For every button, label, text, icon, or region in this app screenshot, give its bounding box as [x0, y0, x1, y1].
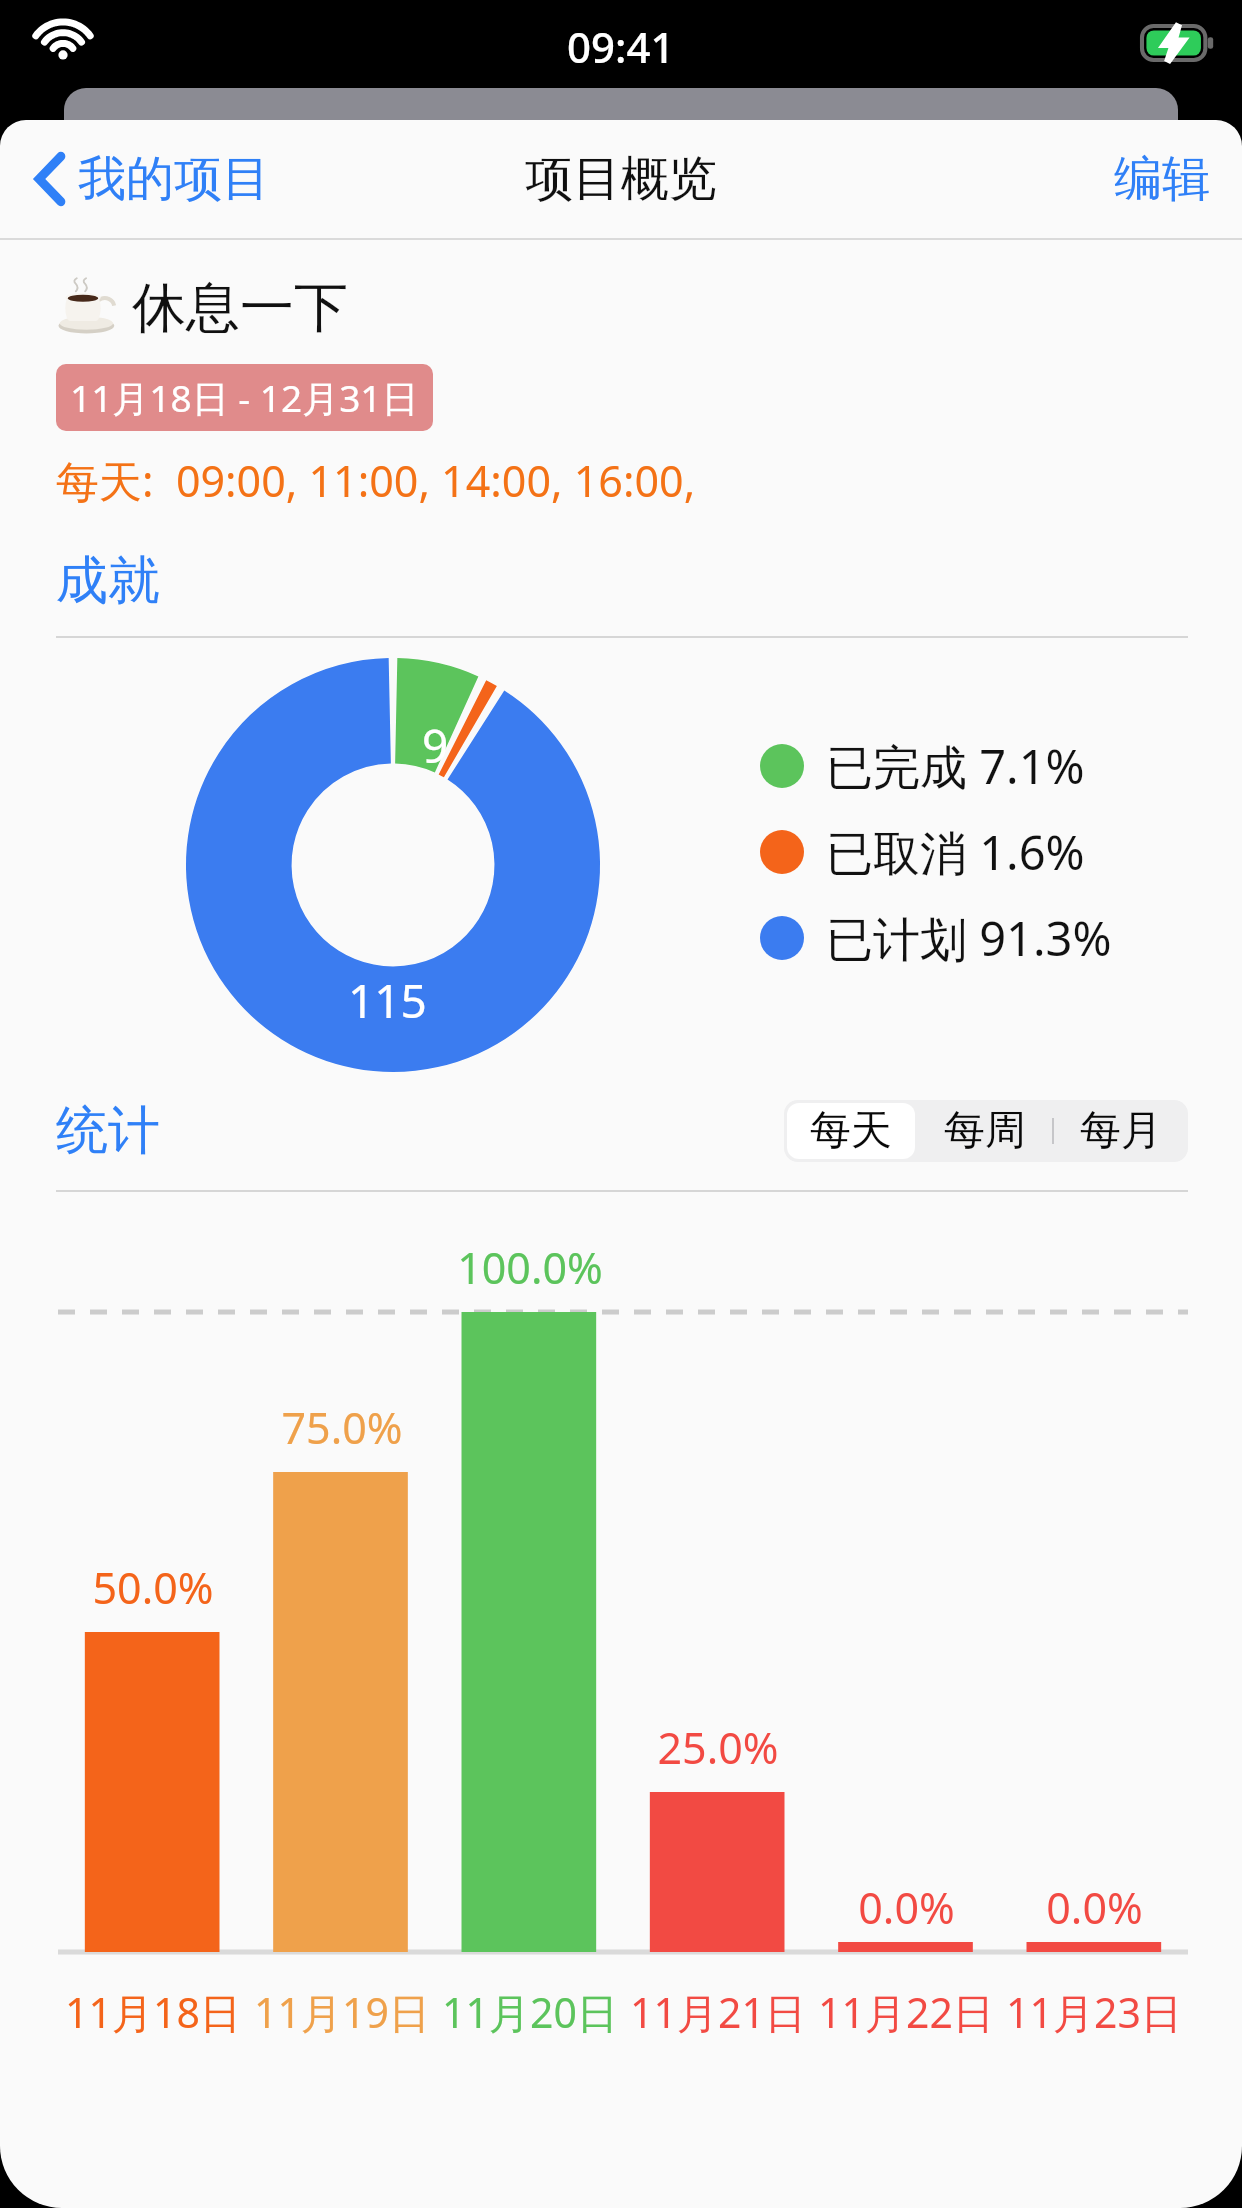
staticText: 09:41 [567, 18, 675, 75]
staticText: 115 [348, 969, 427, 1032]
staticText: 0.0% [858, 1878, 955, 1937]
staticText: 每天 [810, 1105, 892, 1157]
staticText: 已取消 1.6% [826, 820, 1085, 884]
other: Battery charging [1142, 26, 1214, 60]
staticText: 已完成 7.1% [826, 734, 1085, 798]
staticText: 11月23日 [1006, 1984, 1182, 2040]
staticText: 编辑 [1114, 149, 1210, 209]
staticText: 9 [422, 714, 449, 777]
staticText: 每月 [1080, 1105, 1162, 1157]
button[interactable]: 编辑 [1088, 135, 1242, 223]
staticText: 项目概览 [525, 149, 717, 209]
staticText: 11月22日 [818, 1984, 994, 2040]
staticText: 每天: 09:00, 11:00, 14:00, 16:00, [56, 451, 696, 510]
staticText: 75.0% [281, 1398, 403, 1457]
staticText: 100.0% [457, 1238, 603, 1297]
button[interactable]: 我的项目 [0, 135, 294, 223]
staticText: 11月18日 [65, 1984, 241, 2040]
staticText: 成就 [56, 548, 160, 614]
staticText: 统计 [56, 1098, 160, 1164]
staticText: 25.0% [657, 1718, 779, 1777]
other: Wi-Fi [34, 16, 92, 62]
staticText: 每周 [944, 1105, 1026, 1157]
button[interactable]: 每周 [918, 1100, 1052, 1162]
staticText: 11月21日 [630, 1984, 806, 2040]
button[interactable]: 每月 [1054, 1100, 1188, 1162]
staticText: 休息一下 [132, 274, 348, 342]
staticText: 11月18日 - 12月31日 [70, 372, 419, 423]
staticText: 11月20日 [442, 1984, 618, 2040]
staticText: 已计划 91.3% [826, 906, 1112, 970]
staticText: 11月19日 [254, 1984, 430, 2040]
staticText: 50.0% [92, 1558, 214, 1617]
button[interactable]: 每天 [787, 1103, 915, 1159]
staticText: 我的项目 [78, 149, 270, 209]
staticText: 0.0% [1046, 1878, 1143, 1937]
